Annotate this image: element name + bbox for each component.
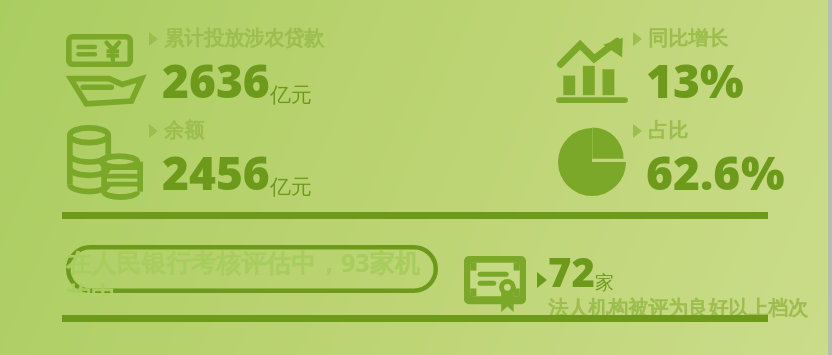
staticText: 亿元 <box>270 82 312 108</box>
staticText: 累计投放涉农贷款 <box>164 26 324 51</box>
staticText: % <box>700 49 744 112</box>
staticText: 同比增长 <box>648 26 728 51</box>
other: 法人机构评级 <box>462 253 528 315</box>
other: 同比增长 <box>552 30 632 110</box>
staticText: 余额 <box>164 118 204 143</box>
staticText: 在人民银行考核评估中，93家机构中 <box>66 245 438 293</box>
button[interactable]: 在人民银行考核评估中，93家机构中 <box>66 245 438 293</box>
staticText: 13 <box>646 49 700 112</box>
button[interactable]: 占比 <box>552 118 771 206</box>
other: 余额 <box>62 122 148 202</box>
button[interactable]: 余额 <box>62 118 298 206</box>
staticText: 62.6 <box>646 141 741 204</box>
button[interactable]: 累计投放涉农贷款 <box>62 26 324 114</box>
staticText: % <box>741 141 785 204</box>
other: 占比 <box>552 122 632 202</box>
staticText: 家 <box>595 271 614 295</box>
staticText: 亿元 <box>270 174 312 200</box>
staticText: 72 <box>548 244 595 298</box>
button[interactable]: 同比增长 <box>552 26 730 114</box>
staticText: 法人机构被评为良好以上档次 <box>548 296 808 321</box>
staticText: 2636 <box>162 49 270 112</box>
staticText: 占比 <box>648 118 688 143</box>
other: 累计投放涉农贷款 <box>62 30 148 110</box>
button[interactable]: 法人机构评级 <box>462 244 796 323</box>
staticText: 2456 <box>162 141 270 204</box>
